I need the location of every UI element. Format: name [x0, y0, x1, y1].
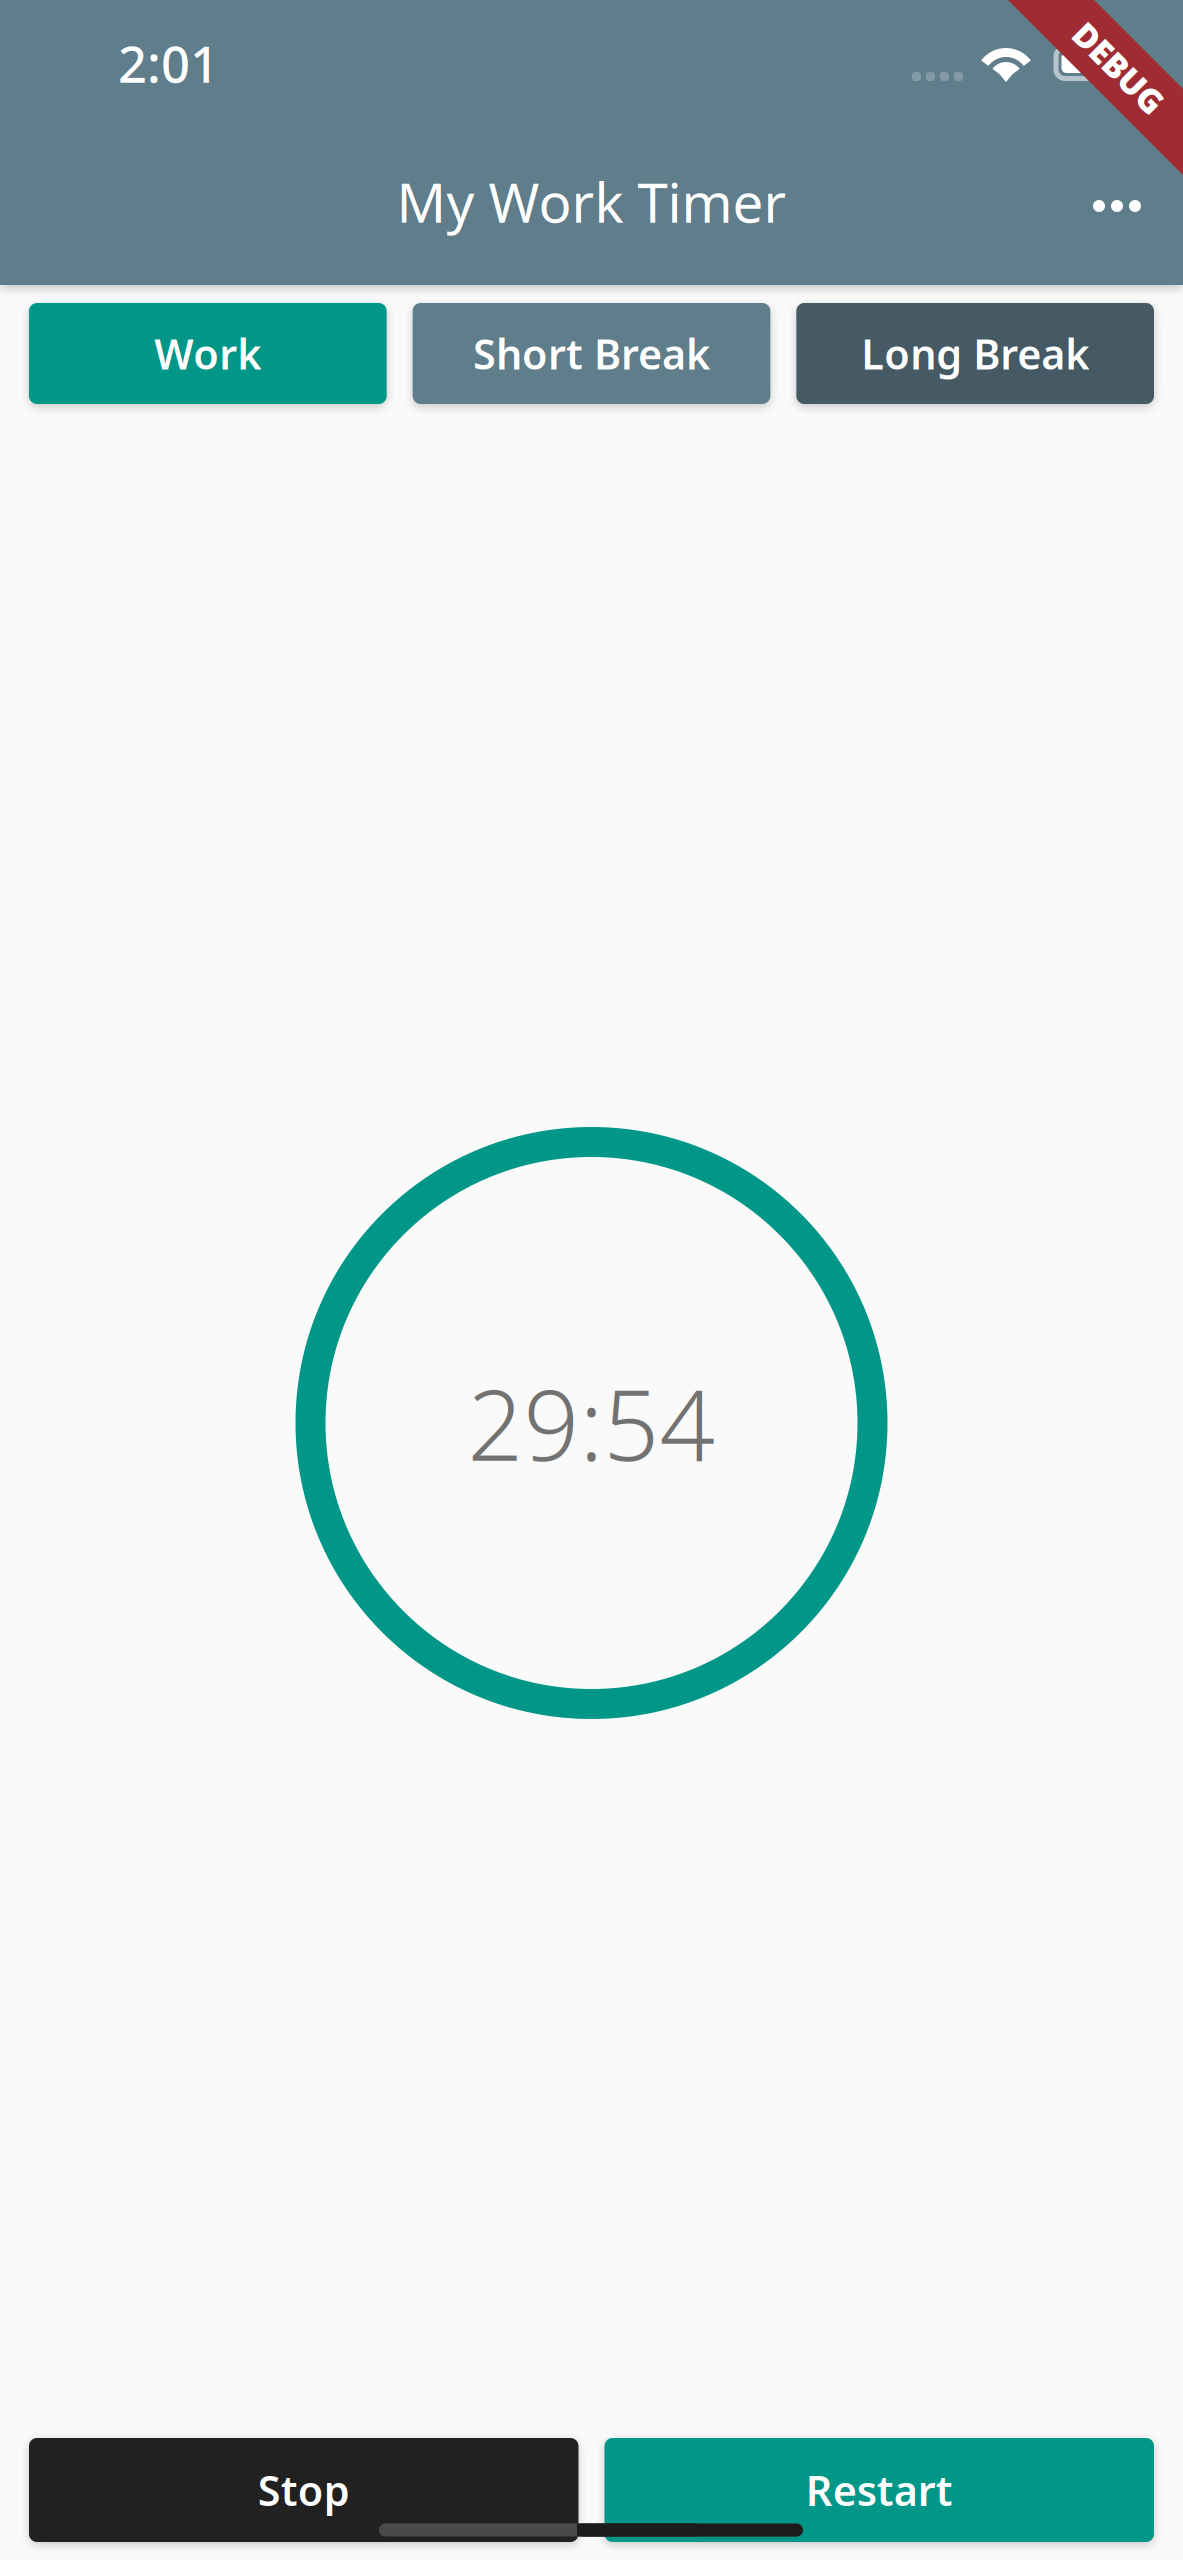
staticText: Short Break: [473, 326, 710, 381]
staticText: DEBUG: [1062, 46, 1176, 90]
button[interactable]: Short Break: [413, 303, 770, 404]
staticText: 2:01: [118, 29, 219, 97]
staticText: Long Break: [861, 326, 1089, 381]
staticText: 29:54: [467, 1358, 715, 1488]
staticText: Restart: [806, 2463, 953, 2517]
button[interactable]: Restart: [604, 2438, 1154, 2542]
button[interactable]: Work: [29, 303, 387, 404]
button[interactable]: More options: [1052, 132, 1182, 271]
button[interactable]: Long Break: [796, 303, 1154, 404]
staticText: My Work Timer: [396, 165, 786, 238]
staticText: Work: [154, 326, 261, 381]
button[interactable]: Stop: [29, 2438, 578, 2542]
staticText: Stop: [258, 2463, 350, 2517]
